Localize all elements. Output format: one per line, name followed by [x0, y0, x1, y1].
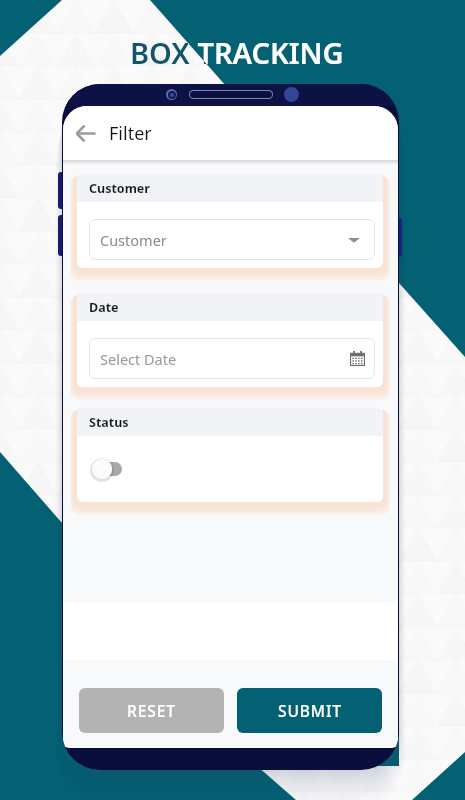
button[interactable]: Customer [89, 219, 375, 260]
staticText: Date [89, 299, 119, 316]
staticText: Customer [89, 180, 150, 197]
staticText: SUBMIT [278, 700, 342, 721]
button[interactable]: Select Date [89, 338, 375, 379]
button[interactable]: SUBMIT [237, 688, 382, 733]
staticText: Filter [109, 121, 152, 146]
staticText: BOX TRACKING [130, 33, 344, 72]
staticText: Select Date [100, 349, 177, 369]
button[interactable]: Status toggle [90, 457, 124, 481]
staticText: RESET [127, 700, 176, 721]
button[interactable]: RESET [79, 688, 224, 733]
staticText: Customer [100, 230, 167, 250]
staticText: BOX TRACKING [130, 33, 344, 72]
button[interactable]: Back [67, 115, 103, 151]
staticText: Status [89, 414, 129, 431]
